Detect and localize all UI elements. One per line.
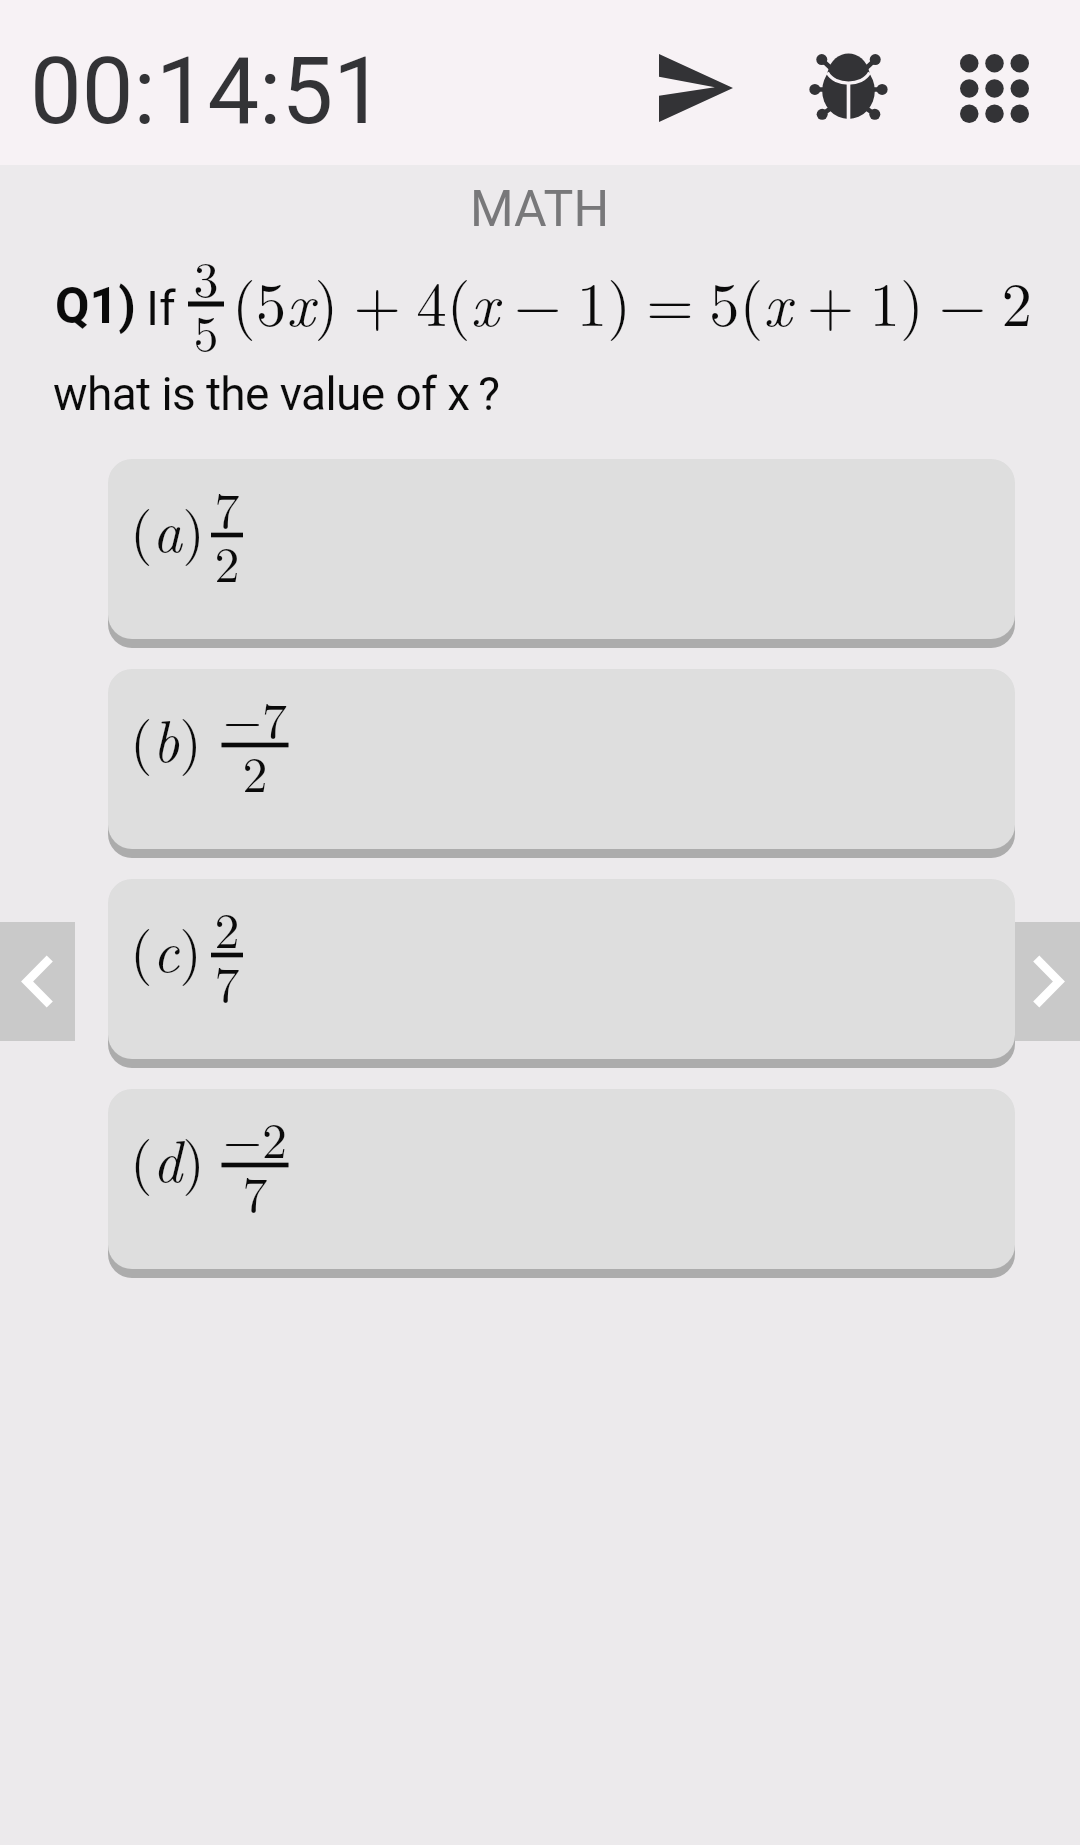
- staticText: 00:14:51: [30, 38, 385, 146]
- button[interactable]: (b): [108, 669, 1015, 858]
- staticText: Q1): [55, 277, 136, 336]
- staticText: (c): [130, 907, 202, 989]
- staticText: (d): [130, 1117, 205, 1199]
- button[interactable]: Report a bug: [798, 33, 898, 133]
- button[interactable]: (d): [108, 1089, 1015, 1278]
- staticText: (a): [130, 487, 205, 569]
- staticText: If: [146, 280, 176, 336]
- staticText: MATH: [470, 180, 610, 239]
- button[interactable]: Send: [646, 38, 746, 138]
- button[interactable]: Apps menu: [944, 38, 1044, 138]
- button[interactable]: Next question: [1015, 922, 1080, 1041]
- button[interactable]: Previous question: [0, 922, 75, 1041]
- staticText: (5x) + 4(x − 1) = 5(x + 1) − 2: [232, 257, 1033, 343]
- staticText: (b): [130, 697, 202, 779]
- staticText: what is the value of x ?: [53, 367, 500, 421]
- button[interactable]: (a): [108, 459, 1015, 648]
- button[interactable]: (c): [108, 879, 1015, 1068]
